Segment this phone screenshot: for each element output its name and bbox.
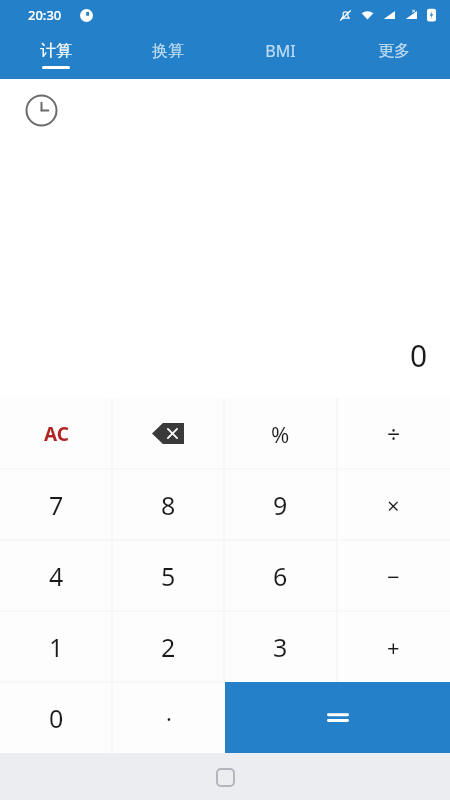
button[interactable]: 1 xyxy=(0,611,112,682)
button[interactable]: 9 xyxy=(224,469,337,540)
button[interactable]: 2 xyxy=(112,611,224,682)
staticText: 计算 xyxy=(40,41,72,61)
button[interactable]: Equals xyxy=(225,682,450,753)
button[interactable]: × xyxy=(337,469,450,540)
button[interactable]: Recents xyxy=(208,760,242,794)
staticText: 20:30 xyxy=(28,6,62,24)
button[interactable]: · xyxy=(112,682,225,753)
staticText: 4 xyxy=(49,559,64,593)
staticText: 6 xyxy=(273,559,288,593)
button[interactable]: 3 xyxy=(224,611,337,682)
button[interactable]: 0 xyxy=(0,682,112,753)
button[interactable]: BMI xyxy=(224,30,337,79)
staticText: BMI xyxy=(265,40,296,62)
staticText: AC xyxy=(44,421,69,447)
button[interactable]: − xyxy=(337,540,450,611)
staticText: ÷ xyxy=(387,418,401,449)
staticText: 更多 xyxy=(378,41,410,61)
staticText: 0 xyxy=(49,701,64,735)
staticText: 换算 xyxy=(152,41,184,61)
staticText: 1 xyxy=(49,630,64,664)
button[interactable]: 5 xyxy=(112,540,224,611)
button[interactable]: Backspace xyxy=(112,398,224,469)
button[interactable]: 6 xyxy=(224,540,337,611)
staticText: − xyxy=(387,561,400,591)
button[interactable]: ÷ xyxy=(337,398,450,469)
staticText: 8 xyxy=(161,488,176,522)
button[interactable]: % xyxy=(224,398,337,469)
staticText: 3 xyxy=(273,630,288,664)
button[interactable]: 计算 xyxy=(0,30,112,79)
staticText: × xyxy=(387,490,400,520)
button[interactable]: 4 xyxy=(0,540,112,611)
button[interactable]: 8 xyxy=(112,469,224,540)
staticText: · xyxy=(166,703,172,733)
staticText: 5 xyxy=(161,559,176,593)
staticText: 9 xyxy=(273,488,288,522)
staticText: 7 xyxy=(49,488,64,522)
staticText: 2 xyxy=(161,630,176,664)
staticText: % xyxy=(271,419,290,449)
button[interactable]: 7 xyxy=(0,469,112,540)
button[interactable]: AC xyxy=(0,398,112,469)
staticText: + xyxy=(387,632,400,662)
button[interactable]: 换算 xyxy=(112,30,224,79)
button[interactable]: History xyxy=(25,94,58,127)
button[interactable]: 更多 xyxy=(337,30,450,79)
button[interactable]: + xyxy=(337,611,450,682)
staticText: 0 xyxy=(410,335,428,376)
